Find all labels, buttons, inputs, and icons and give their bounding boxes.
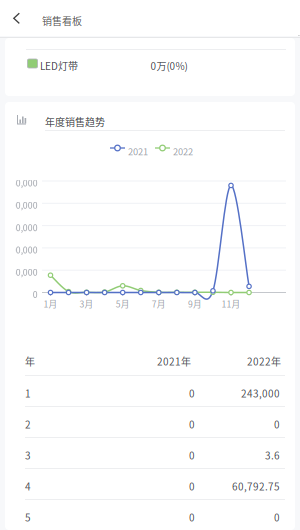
- staticText: 2022年: [247, 354, 281, 368]
- staticText: 0: [189, 417, 195, 431]
- staticText: 0万(0%): [280, 22, 300, 37]
- staticText: 150,000: [6, 221, 38, 234]
- staticText: 50,000: [11, 266, 38, 278]
- staticText: 0: [189, 510, 195, 524]
- staticText: 100,000: [6, 243, 38, 256]
- staticText: 4: [25, 479, 31, 493]
- staticText: 3: [25, 448, 31, 462]
- staticText: 1: [25, 386, 31, 400]
- staticText: 200,000: [6, 199, 38, 211]
- staticText: 2021年: [157, 354, 191, 368]
- staticText: 11月: [221, 297, 240, 310]
- staticText: 243,000: [241, 386, 280, 400]
- staticText: 3月: [80, 297, 94, 310]
- staticText: 5月: [116, 297, 130, 310]
- staticText: 年度销售趋势: [45, 114, 105, 129]
- button[interactable]: 返回: [0, 0, 300, 36]
- staticText: 销售看板: [42, 13, 82, 28]
- staticText: 年: [25, 354, 35, 368]
- staticText: 0: [189, 386, 195, 400]
- staticText: 0: [189, 479, 195, 493]
- staticText: 0: [274, 510, 280, 524]
- staticText: 0: [33, 288, 38, 300]
- staticText: 0万(0%): [150, 58, 187, 73]
- staticText: 0: [274, 417, 280, 431]
- staticText: 60,792.75: [232, 479, 280, 493]
- staticText: 5: [25, 510, 31, 524]
- staticText: 0: [189, 448, 195, 462]
- staticText: 1月: [43, 297, 57, 310]
- staticText: 2: [25, 417, 31, 431]
- staticText: LED灯带: [40, 58, 78, 73]
- staticText: 7月: [152, 297, 166, 310]
- staticText: 250,000: [6, 176, 38, 189]
- staticText: 9月: [188, 297, 202, 310]
- staticText: 3.6: [265, 448, 280, 462]
- staticText: 2021: [128, 144, 148, 158]
- staticText: 2022: [173, 144, 193, 158]
